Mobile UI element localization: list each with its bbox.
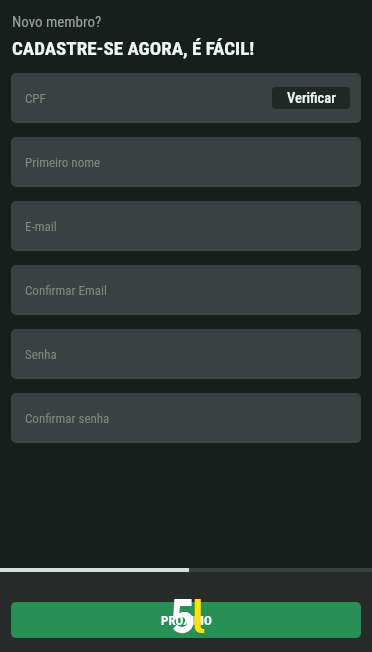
button[interactable]: CPF — [11, 73, 361, 123]
button[interactable]: Primeiro nome — [11, 137, 361, 187]
button[interactable]: PRÓXIMO — [11, 602, 361, 638]
button[interactable]: Confirmar Email — [11, 265, 361, 315]
staticText: CADASTRE-SE AGORA, É FÁCIL! — [12, 37, 255, 59]
staticText: Confirmar senha — [25, 411, 110, 426]
staticText: Confirmar Email — [25, 283, 107, 298]
staticText: Verificar — [287, 90, 336, 107]
staticText: Primeiro nome — [25, 155, 101, 170]
staticText: CPF — [25, 91, 46, 106]
button[interactable]: E-mail — [11, 201, 361, 251]
staticText: PRÓXIMO — [161, 613, 212, 628]
staticText: Senha — [25, 347, 57, 362]
button[interactable]: Confirmar senha — [11, 393, 361, 443]
staticText: Novo membro? — [12, 13, 102, 31]
button[interactable]: Senha — [11, 329, 361, 379]
staticText: E-mail — [25, 219, 57, 234]
button[interactable]: Verificar — [272, 87, 350, 109]
